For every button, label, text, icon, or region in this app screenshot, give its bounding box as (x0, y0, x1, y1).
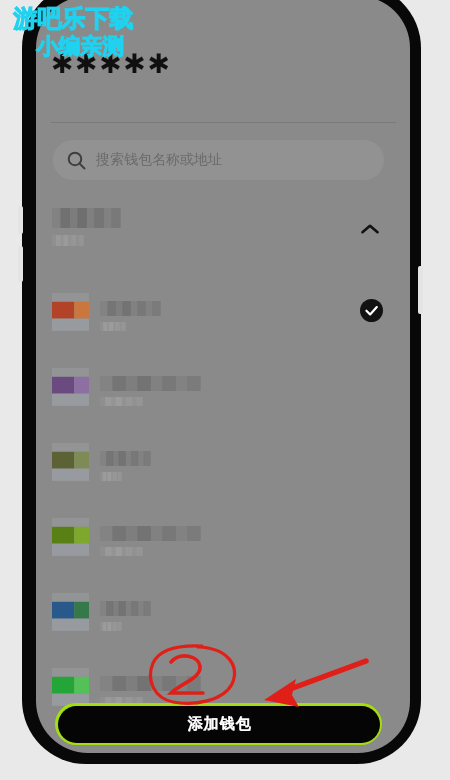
staticText: 小编亲测 (36, 33, 124, 61)
button[interactable]: Selected wallet (360, 299, 383, 322)
button[interactable]: 添加钱包 (55, 703, 382, 745)
button[interactable] (36, 579, 410, 651)
button[interactable]: 搜索钱包名称或地址 (53, 140, 384, 180)
staticText: ✱✱✱✱✱ (51, 48, 172, 79)
button[interactable] (36, 654, 410, 726)
button[interactable] (36, 354, 410, 426)
button[interactable] (36, 504, 410, 576)
staticText: 游吧乐下载 (13, 4, 133, 34)
button[interactable]: Selected wallet (36, 279, 410, 351)
staticText: 添加钱包 (187, 715, 251, 734)
staticText: 搜索钱包名称或地址 (96, 151, 222, 169)
button[interactable]: Collapse group (356, 216, 384, 244)
button[interactable]: Collapse group (36, 202, 410, 256)
button[interactable] (36, 429, 410, 501)
